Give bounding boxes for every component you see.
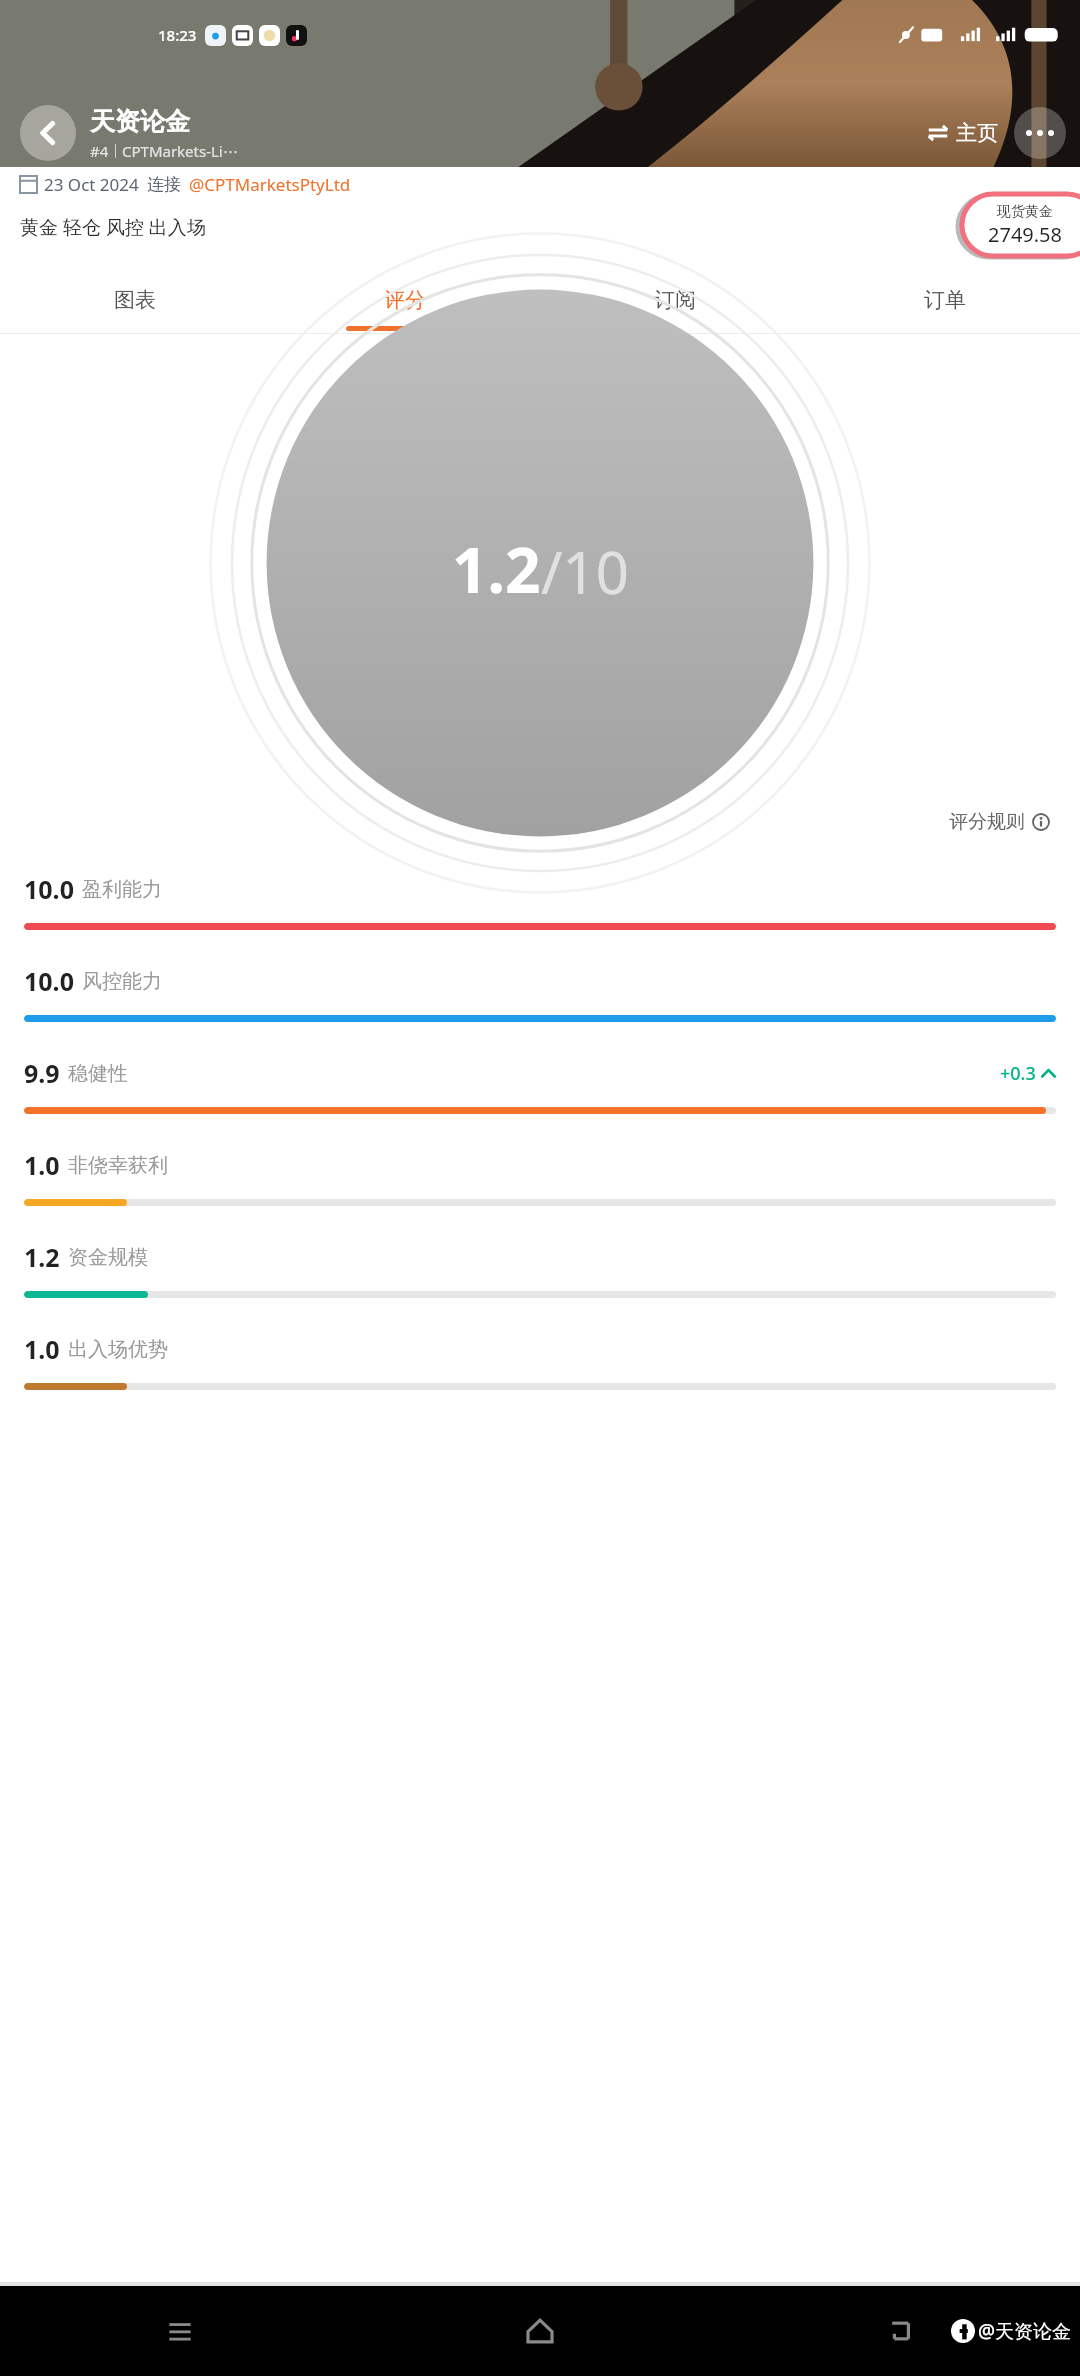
staticText: 图表	[114, 287, 156, 313]
staticText: 订阅	[654, 287, 696, 313]
staticText: 连接	[147, 174, 181, 195]
staticText: 1.0	[24, 1332, 60, 1366]
button[interactable]: 10.0	[0, 858, 1080, 950]
button[interactable]: 9.9	[0, 1042, 1080, 1134]
button[interactable]: Back	[720, 2286, 1080, 2376]
staticText: 1.2	[24, 1240, 60, 1274]
staticText: 风控能力	[82, 969, 162, 994]
staticText: #4	[90, 141, 109, 161]
staticText: 天资论金	[90, 106, 190, 137]
button[interactable]: 现货黄金	[962, 194, 1080, 256]
button[interactable]: Recent apps	[0, 2286, 360, 2376]
staticText: 现货黄金	[997, 203, 1053, 221]
button[interactable]: Back	[20, 105, 76, 161]
staticText: 1.2	[452, 527, 541, 611]
staticText: 评分规则	[949, 810, 1025, 834]
button[interactable]: 1.0	[0, 1134, 1080, 1226]
staticText: 非侥幸获利	[68, 1153, 168, 1178]
staticText: 23 Oct 2024	[44, 173, 139, 196]
button[interactable]: 评分规则	[943, 804, 1056, 840]
button[interactable]: 主页	[923, 114, 1002, 152]
staticText: 9.9	[24, 1056, 60, 1090]
staticText: 订单	[924, 287, 966, 313]
staticText: 10.0	[24, 964, 74, 998]
staticText: @CPTMarketsPtyLtd	[189, 173, 351, 196]
button[interactable]: 10.0	[0, 950, 1080, 1042]
staticText: 主页	[956, 120, 998, 146]
staticText: 出入场优势	[68, 1337, 168, 1362]
staticText: /10	[541, 532, 629, 611]
button[interactable]: More options	[1014, 107, 1066, 159]
staticText: 盈利能力	[82, 877, 162, 902]
button[interactable]: 订单	[810, 267, 1080, 333]
button[interactable]: 图表	[0, 267, 270, 333]
staticText: 黄金 轻仓 风控 出入场	[20, 214, 206, 240]
staticText: 资金规模	[68, 1245, 148, 1270]
button[interactable]: 1.2	[0, 1226, 1080, 1318]
staticText: 评分	[384, 287, 426, 313]
staticText: 1.0	[24, 1148, 60, 1182]
button[interactable]: 订阅	[540, 267, 810, 333]
staticText: @天资论金	[978, 2318, 1072, 2344]
staticText: +0.3	[1000, 1061, 1036, 1086]
staticText: 稳健性	[68, 1061, 128, 1086]
button[interactable]: 评分	[270, 267, 540, 333]
staticText: 18:23	[158, 25, 197, 45]
button[interactable]: Home	[360, 2286, 720, 2376]
staticText: CPTMarkets-Li⋯	[122, 141, 238, 161]
staticText: 10.0	[24, 872, 74, 906]
button[interactable]: 1.0	[0, 1318, 1080, 1410]
staticText: 2749.58	[988, 221, 1062, 248]
